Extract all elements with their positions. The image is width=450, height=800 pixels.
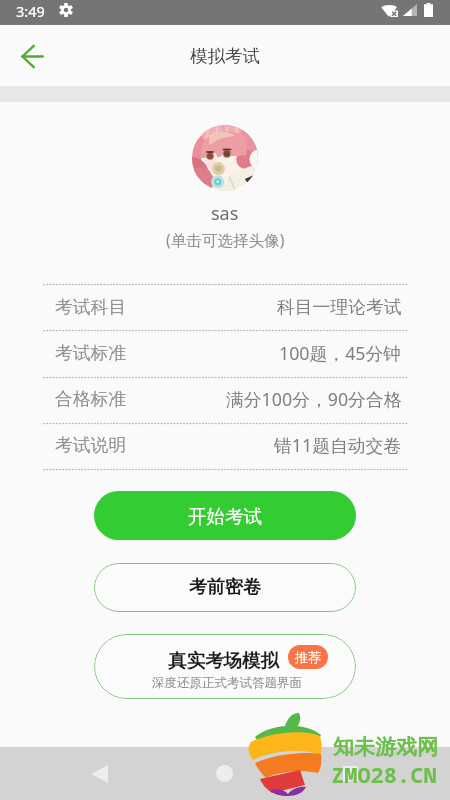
staticText: 错11题自动交卷 <box>274 433 402 457</box>
staticText: 100题，45分钟 <box>279 341 402 365</box>
button[interactable]: 考前密卷 <box>94 563 356 612</box>
staticText: 推荐 <box>295 649 321 665</box>
staticText: (单击可选择头像) <box>166 229 285 250</box>
staticText: 科目一理论考试 <box>277 296 402 318</box>
button[interactable]: Choose avatar <box>192 125 258 191</box>
button[interactable]: 开始考试 <box>94 491 356 540</box>
staticText: ZMO28.CN <box>331 759 437 789</box>
button[interactable]: 考试说明 <box>43 422 407 468</box>
staticText: 考试科目 <box>55 296 127 318</box>
staticText: 满分100分，90分合格 <box>226 387 402 411</box>
button[interactable]: Home <box>204 753 245 794</box>
button[interactable]: 考试标准 <box>43 330 407 376</box>
button[interactable]: 考试科目 <box>43 284 407 330</box>
staticText: 模拟考试 <box>190 45 260 67</box>
staticText: 考前密卷 <box>189 576 261 599</box>
staticText: 3:49 <box>16 1 45 21</box>
staticText: 开始考试 <box>188 505 262 528</box>
staticText: 深度还原正式考试答题界面 <box>152 675 302 691</box>
staticText: 合格标准 <box>55 388 127 410</box>
button[interactable]: 真实考场模拟 <box>94 634 356 699</box>
staticText: 真实考场模拟 <box>168 649 279 672</box>
staticText: 考试标准 <box>55 342 127 364</box>
button[interactable]: Recents <box>330 753 371 794</box>
button[interactable]: Back <box>12 36 52 76</box>
staticText: 知未游戏网 <box>333 734 438 760</box>
button[interactable]: Back <box>79 753 120 794</box>
button[interactable]: 合格标准 <box>43 376 407 422</box>
staticText: sas <box>211 201 239 226</box>
staticText: 考试说明 <box>55 434 127 456</box>
